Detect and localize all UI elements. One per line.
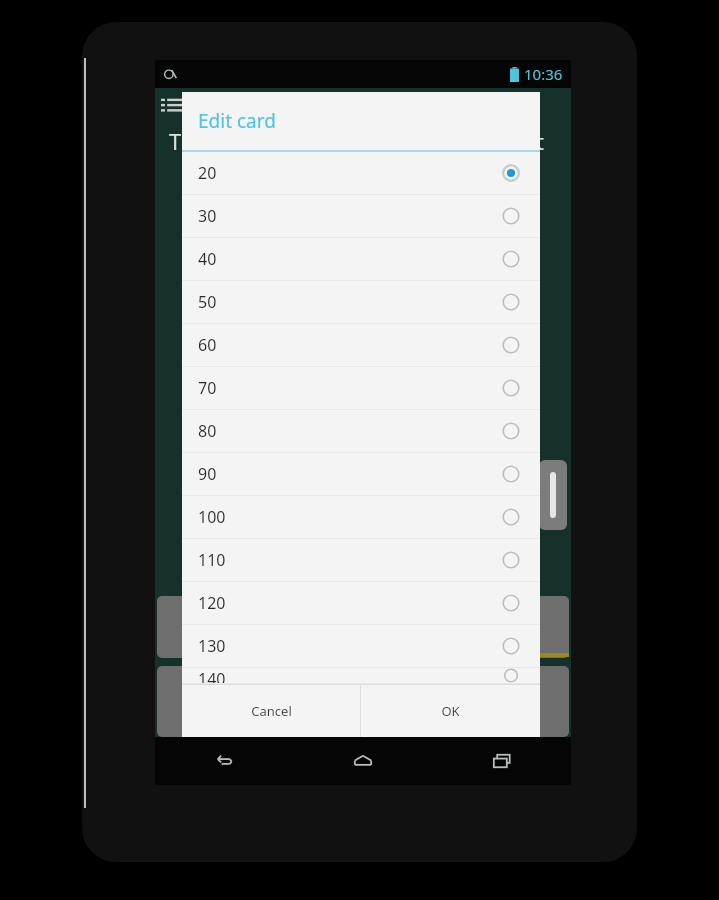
staticText: 50 — [198, 291, 502, 313]
button[interactable]: Back — [155, 737, 293, 785]
staticText: t — [536, 126, 544, 156]
staticText: 130 — [198, 635, 502, 657]
button[interactable]: 40 — [182, 238, 540, 281]
staticText: Edit card — [198, 108, 276, 134]
staticText: Cancel — [251, 702, 292, 720]
button[interactable]: 110 — [182, 539, 540, 582]
staticText: 90 — [198, 463, 502, 485]
button[interactable]: 140 — [182, 668, 540, 684]
button[interactable]: 120 — [182, 582, 540, 625]
staticText: 110 — [198, 549, 502, 571]
button[interactable]: 70 — [182, 367, 540, 410]
button[interactable]: 60 — [182, 324, 540, 367]
button[interactable]: 90 — [182, 453, 540, 496]
staticText: 140 — [198, 668, 502, 683]
other: List — [161, 95, 183, 117]
staticText: 30 — [198, 205, 502, 227]
staticText: 40 — [198, 248, 502, 270]
button[interactable]: 80 — [182, 410, 540, 453]
staticText: OK — [441, 702, 460, 720]
staticText: T — [169, 126, 182, 156]
button[interactable]: Recent apps — [432, 737, 571, 785]
button[interactable]: OK — [361, 685, 540, 737]
staticText: 20 — [198, 162, 502, 184]
staticText: 80 — [198, 420, 502, 442]
button[interactable]: Cancel — [182, 685, 360, 737]
staticText: 10:36 — [524, 64, 563, 84]
staticText: 120 — [198, 592, 502, 614]
button[interactable]: 30 — [182, 195, 540, 238]
staticText: 100 — [198, 506, 502, 528]
button[interactable]: Home — [293, 737, 432, 785]
button[interactable]: 130 — [182, 625, 540, 668]
button[interactable]: 20 — [182, 152, 540, 195]
button[interactable]: 50 — [182, 281, 540, 324]
staticText: 60 — [198, 334, 502, 356]
button[interactable]: 100 — [182, 496, 540, 539]
staticText: 70 — [198, 377, 502, 399]
